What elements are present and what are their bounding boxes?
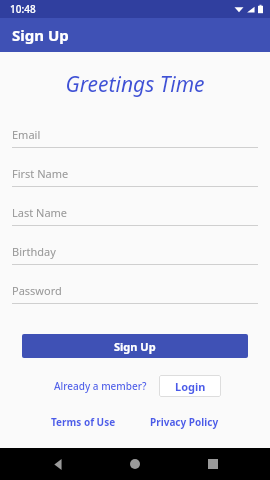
staticText: Sign Up [12, 25, 69, 45]
button[interactable]: Terms of Use [45, 411, 122, 433]
staticText: Greetings Time [65, 70, 205, 99]
button[interactable]: Birthday [12, 238, 258, 277]
staticText: Sign Up [114, 339, 156, 354]
button[interactable]: Already a member? [50, 376, 151, 396]
button[interactable]: Sign Up [22, 334, 248, 358]
staticText: Birthday [12, 244, 56, 259]
staticText: Already a member? [54, 379, 147, 393]
staticText: Terms of Use [51, 415, 116, 429]
button[interactable]: Last Name [12, 199, 258, 238]
button[interactable]: Password [12, 277, 258, 316]
button[interactable]: Email [12, 121, 258, 160]
button[interactable]: Back [38, 448, 78, 480]
staticText: 10:48 [10, 2, 36, 16]
staticText: Password [12, 283, 62, 298]
button[interactable]: Recent apps [193, 448, 233, 480]
staticText: First Name [12, 166, 69, 181]
staticText: Privacy Policy [150, 415, 219, 429]
staticText: Last Name [12, 205, 68, 220]
staticText: Email [12, 127, 41, 142]
button[interactable]: Home [115, 448, 155, 480]
staticText: Login [175, 379, 206, 394]
button[interactable]: First Name [12, 160, 258, 199]
button[interactable]: Login [159, 375, 221, 397]
button[interactable]: Privacy Policy [144, 411, 225, 433]
